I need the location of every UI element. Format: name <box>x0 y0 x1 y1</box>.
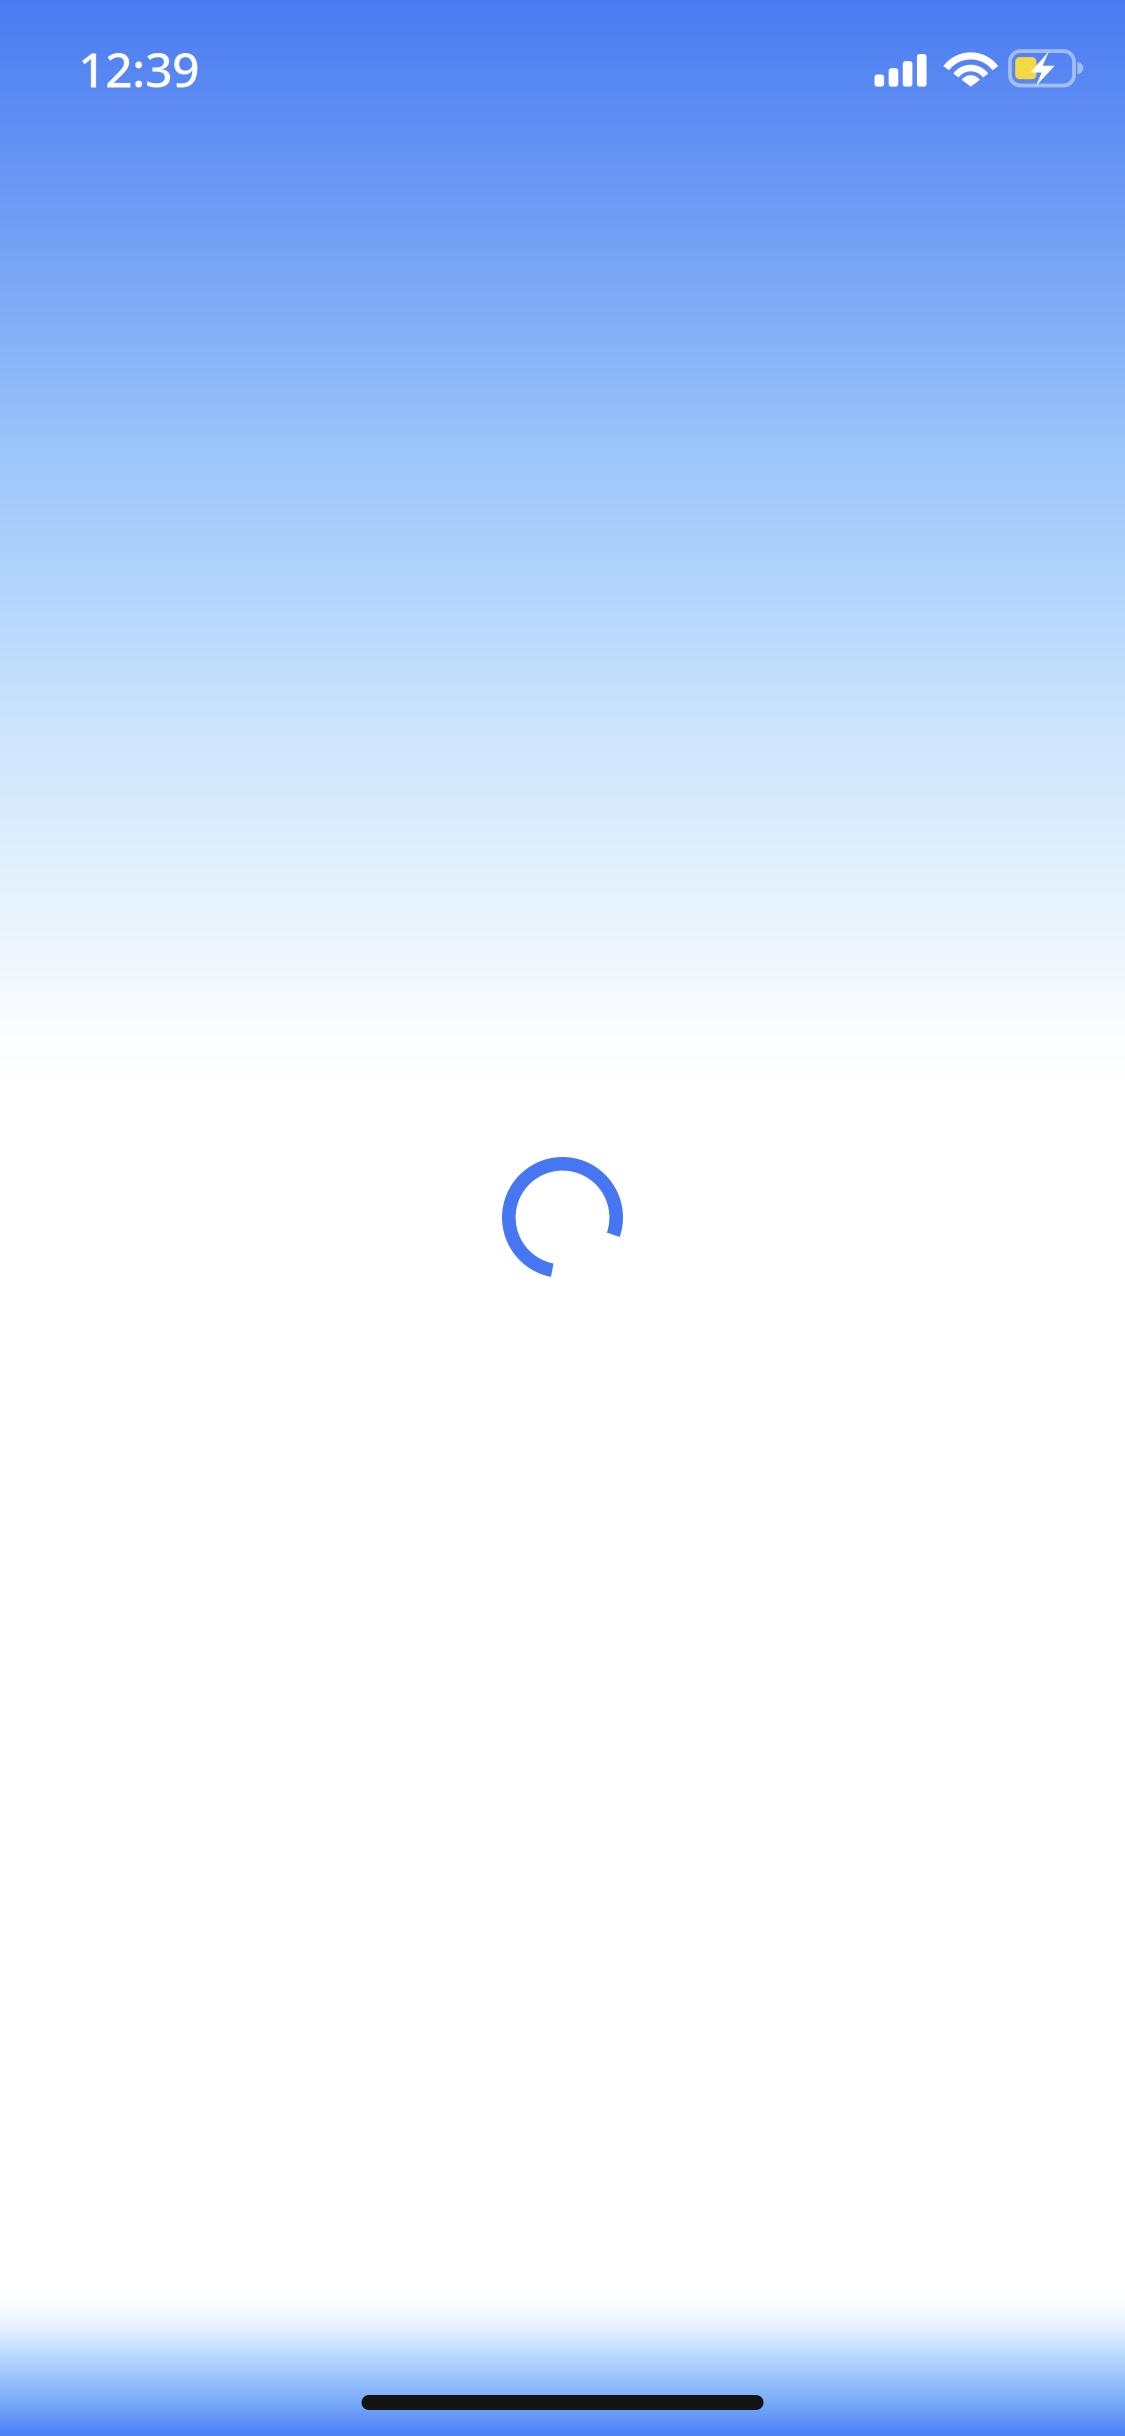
staticText: 12:39 <box>78 37 199 101</box>
